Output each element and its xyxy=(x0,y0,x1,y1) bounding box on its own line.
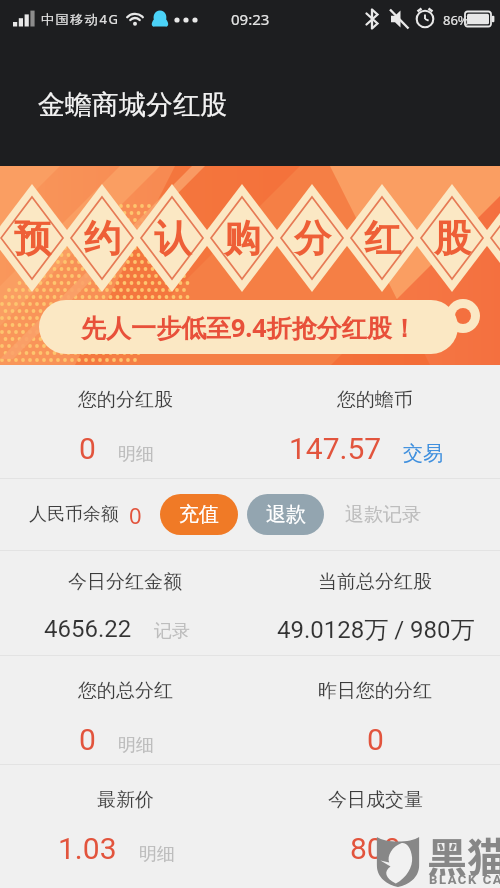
staticText: 黑猫 xyxy=(427,826,500,884)
staticText: 约 xyxy=(84,215,121,262)
staticText: 您的总分红 xyxy=(78,679,173,703)
staticText: 49.0128万 / 980万 xyxy=(277,615,475,645)
staticText: 充值 xyxy=(179,502,219,527)
staticText: 预 xyxy=(14,215,51,262)
staticText: 当前总分红股 xyxy=(318,570,432,594)
staticText: 147.57 xyxy=(289,431,382,466)
button[interactable]: 明细 xyxy=(118,443,154,466)
staticText: 最新价 xyxy=(97,788,154,812)
button[interactable]: 交易 xyxy=(403,441,443,466)
staticText: 0 xyxy=(79,431,96,466)
staticText: 您的分红股 xyxy=(78,388,173,412)
staticText: 800 xyxy=(350,831,401,866)
staticText: 认 xyxy=(154,215,191,262)
button[interactable]: 充值 xyxy=(160,494,238,535)
staticText: 中国移动4G xyxy=(41,10,120,28)
staticText: 0 xyxy=(79,722,96,757)
button[interactable]: 记录 xyxy=(154,620,190,643)
staticText: BLACK CAT xyxy=(429,872,500,887)
button[interactable]: 先人一步低至9.4折抢分红股！ xyxy=(39,300,458,354)
staticText: 1.03 xyxy=(58,831,117,866)
staticText: 0 xyxy=(129,500,142,530)
staticText: 退款 xyxy=(266,502,306,527)
staticText: 今日成交量 xyxy=(328,788,423,812)
staticText: 金蟾商城分红股 xyxy=(38,88,227,122)
staticText: 今日分红金额 xyxy=(68,570,182,594)
staticText: 09:23 xyxy=(231,9,270,29)
staticText: 购 xyxy=(224,215,261,262)
staticText: 红 xyxy=(364,215,401,262)
staticText: 先人一步低至9.4折抢分红股！ xyxy=(81,310,417,344)
staticText: 您的蟾币 xyxy=(337,388,413,412)
button[interactable]: 退款记录 xyxy=(345,503,421,527)
button[interactable]: 退款 xyxy=(247,494,324,535)
button[interactable]: 明细 xyxy=(139,843,175,866)
staticText: 昨日您的分红 xyxy=(318,679,432,703)
staticText: 0 xyxy=(367,722,384,757)
staticText: 86% xyxy=(443,11,469,29)
staticText: 分 xyxy=(294,215,331,262)
button[interactable]: 明细 xyxy=(118,734,154,757)
staticText: 人民币余额 xyxy=(29,503,119,526)
staticText: 4656.22 xyxy=(44,615,132,643)
staticText: 股 xyxy=(434,215,471,262)
